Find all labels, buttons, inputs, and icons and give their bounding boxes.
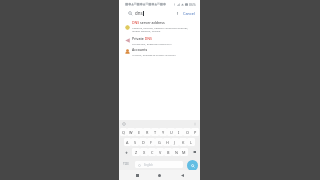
staticText: R: [146, 130, 149, 135]
staticText: S: [134, 140, 137, 145]
button[interactable]: Accounts: [119, 45, 200, 57]
button[interactable]: Recents: [133, 171, 142, 180]
button[interactable]: Search: [187, 160, 198, 171]
staticText: G: [158, 140, 161, 145]
staticText: O: [186, 130, 189, 135]
staticText: J: [174, 140, 176, 145]
staticText: X: [143, 150, 146, 155]
button[interactable]: I: [175, 128, 183, 136]
button[interactable]: Z: [132, 148, 140, 156]
staticText: M: [182, 150, 186, 155]
button[interactable]: A: [124, 138, 131, 146]
button[interactable]: S: [131, 138, 139, 146]
staticText: Network, internet, network connection se…: [132, 26, 194, 32]
button[interactable]: L: [187, 138, 195, 146]
staticText: DNS server address: [132, 20, 165, 25]
staticText: ?123: [123, 162, 129, 166]
button[interactable]: Back: [178, 171, 187, 180]
staticText: Account, manage first party accounts: [132, 53, 176, 56]
staticText: K: [182, 140, 185, 145]
button[interactable]: N: [172, 148, 180, 156]
button[interactable]: D: [139, 138, 147, 146]
button[interactable]: Home: [155, 171, 164, 180]
staticText: Connection, Enabling Private DNS: [132, 42, 172, 45]
staticText: U: [170, 130, 173, 135]
button[interactable]: Y: [159, 128, 167, 136]
button[interactable]: W: [127, 128, 135, 136]
staticText: Q: [122, 130, 125, 135]
button[interactable]: Space: [135, 161, 183, 168]
staticText: E: [138, 130, 141, 135]
button[interactable]: Private DNS: [119, 34, 200, 45]
button[interactable]: M: [180, 148, 188, 156]
button[interactable]: Symbols: [120, 160, 131, 168]
staticText: L: [190, 140, 192, 145]
staticText: 86%: [189, 2, 196, 7]
button[interactable]: O: [183, 128, 191, 136]
staticText: T: [154, 130, 157, 135]
staticText: N: [175, 150, 178, 155]
staticText: B: [167, 150, 170, 155]
staticText: H: [166, 140, 169, 145]
button[interactable]: Backspace: [188, 148, 199, 156]
staticText: Cancel: [183, 11, 195, 16]
staticText: ■●▲✉■●▲✉■●▲✉■●: [125, 2, 166, 6]
staticText: C: [151, 150, 154, 155]
staticText: P: [194, 130, 197, 135]
staticText: I: [178, 130, 180, 135]
staticText: English: [144, 163, 153, 167]
staticText: D: [142, 140, 145, 145]
staticText: dns: [135, 10, 143, 16]
button[interactable]: Q: [120, 128, 127, 136]
button[interactable]: J: [171, 138, 179, 146]
button[interactable]: P: [191, 128, 199, 136]
button[interactable]: X: [140, 148, 148, 156]
staticText: F: [150, 140, 152, 145]
staticText: W: [129, 130, 133, 135]
button[interactable]: Shift: [120, 148, 132, 156]
button[interactable]: DNS server address: [119, 18, 200, 34]
staticText: Private DNS: [132, 36, 152, 41]
button[interactable]: H: [163, 138, 171, 146]
button[interactable]: G: [155, 138, 163, 146]
button[interactable]: C: [148, 148, 156, 156]
staticText: Y: [162, 130, 165, 135]
staticText: Z: [135, 150, 138, 155]
button[interactable]: K: [179, 138, 187, 146]
staticText: A: [126, 140, 129, 145]
button[interactable]: T: [151, 128, 159, 136]
staticText: Accounts: [132, 47, 148, 52]
button[interactable]: R: [143, 128, 151, 136]
button[interactable]: B: [164, 148, 172, 156]
button[interactable]: V: [156, 148, 164, 156]
button[interactable]: F: [147, 138, 155, 146]
button[interactable]: Cancel: [181, 10, 197, 17]
button[interactable]: U: [167, 128, 175, 136]
button[interactable]: E: [135, 128, 143, 136]
staticText: V: [159, 150, 162, 155]
button[interactable]: Voice search: [174, 10, 180, 16]
